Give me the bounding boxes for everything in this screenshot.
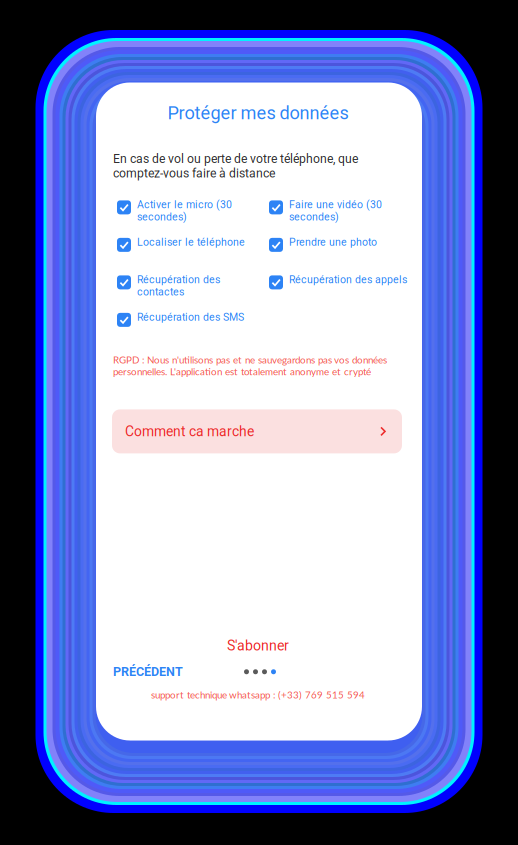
staticText: support technique whatsapp : (+33) 769 5…: [151, 689, 365, 700]
button[interactable]: PRÉCÉDENT: [113, 664, 183, 679]
staticText: PRÉCÉDENT: [113, 664, 183, 679]
staticText: RGPD : Nous n'utilisons pas et ne sauveg…: [113, 354, 387, 377]
button[interactable]: Récupération des SMS: [117, 311, 263, 348]
button[interactable]: Activer le micro (30 secondes): [117, 198, 263, 235]
staticText: Prendre une photo: [289, 236, 377, 248]
staticText: Faire une vidéo (30 secondes): [289, 198, 382, 223]
button[interactable]: Récupération des appels: [269, 273, 409, 310]
button[interactable]: Récupération des contactes: [117, 273, 263, 310]
staticText: Protéger mes données: [167, 102, 348, 124]
staticText: Localiser le téléphone: [137, 236, 245, 248]
staticText: Récupération des SMS: [137, 311, 244, 323]
staticText: Récupération des appels: [289, 273, 407, 286]
staticText: Activer le micro (30 secondes): [137, 198, 232, 223]
button[interactable]: Localiser le téléphone: [117, 236, 263, 273]
staticText: Récupération des contactes: [137, 273, 220, 298]
button[interactable]: Faire une vidéo (30 secondes): [269, 198, 409, 235]
staticText: En cas de vol ou perte de votre téléphon…: [113, 152, 358, 180]
button[interactable]: Comment ca marche: [112, 409, 402, 453]
staticText: Comment ca marche: [125, 423, 254, 439]
button[interactable]: S'abonner: [113, 639, 403, 653]
staticText: S'abonner: [227, 637, 289, 654]
button[interactable]: Prendre une photo: [269, 236, 409, 273]
